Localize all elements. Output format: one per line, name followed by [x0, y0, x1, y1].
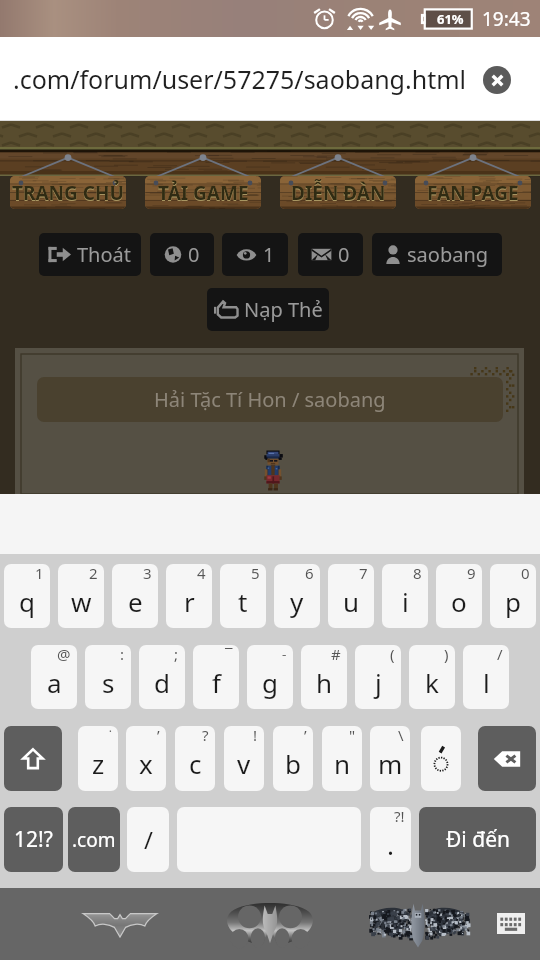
button[interactable]: TẢI GAME [145, 176, 261, 209]
staticText: .com/forum/user/57275/saobang.html [13, 62, 466, 96]
staticText: / [144, 823, 153, 856]
button[interactable]: : [85, 645, 131, 709]
staticText: ! [253, 726, 258, 745]
button[interactable]: ( [355, 645, 401, 709]
button[interactable]: 3 [112, 564, 158, 628]
staticText: FAN PAGE [427, 180, 519, 206]
staticText: 1 [263, 241, 275, 268]
button[interactable]: Thoát [39, 233, 141, 276]
button[interactable]: 1 [4, 564, 50, 628]
button[interactable]: 2 [58, 564, 104, 628]
staticText: Thoát [77, 241, 132, 268]
staticText: : [120, 645, 125, 664]
button[interactable]: Đi đến [419, 807, 536, 872]
staticText: " [349, 726, 356, 745]
staticText: j [375, 665, 382, 700]
button[interactable]: ) [409, 645, 455, 709]
button[interactable]: Home [210, 888, 330, 960]
button[interactable]: Back [60, 888, 180, 960]
button[interactable]: FAN PAGE [415, 176, 531, 209]
button[interactable]: .com [68, 807, 120, 872]
button[interactable]: 4 [166, 564, 212, 628]
button[interactable]: 6 [274, 564, 320, 628]
button[interactable]: 1 [222, 233, 288, 276]
button[interactable]: / [127, 807, 169, 872]
staticText: Hải Tặc Tí Hon / saobang [154, 386, 386, 413]
staticText: @ [57, 645, 71, 664]
staticText: ?! [394, 807, 405, 826]
button[interactable]: ˗ [247, 645, 293, 709]
button[interactable]: ! [224, 726, 264, 791]
button[interactable]: \ [370, 726, 410, 791]
button[interactable]: ?! [370, 807, 411, 872]
button[interactable]: 7 [328, 564, 374, 628]
button[interactable]: 12!? [4, 807, 63, 872]
staticText: 8 [413, 564, 422, 583]
button[interactable]: TRANG CHỦ [10, 176, 126, 209]
staticText: i [402, 584, 409, 619]
staticText: 9 [467, 564, 476, 583]
button[interactable]: 0 [490, 564, 536, 628]
staticText: x [139, 746, 153, 781]
staticText: m [378, 746, 403, 781]
staticText: 61% [437, 10, 464, 28]
button[interactable]: 0 [298, 233, 363, 276]
staticText: r [184, 584, 195, 619]
staticText: TẢI GAME [158, 181, 249, 207]
staticText: 2 [89, 564, 98, 583]
button[interactable]: Nạp Thẻ [207, 288, 329, 331]
button[interactable]: Backspace [478, 726, 536, 791]
button[interactable]: " [322, 726, 362, 791]
button[interactable]: Shift [4, 726, 62, 791]
button[interactable]: ; [139, 645, 185, 709]
button[interactable]: Clear text [483, 66, 511, 94]
staticText: b [285, 746, 301, 781]
staticText: u [343, 584, 360, 619]
button[interactable]: saobang [372, 233, 502, 276]
staticText: 0 [188, 241, 200, 268]
staticText: g [262, 665, 278, 700]
button[interactable]: Recent apps [358, 888, 478, 960]
staticText: s [102, 665, 115, 700]
button[interactable]: DIỄN ĐÀN [280, 176, 396, 209]
staticText: 1 [35, 564, 44, 583]
staticText: Đi đến [446, 825, 510, 854]
button[interactable]: @ [31, 645, 77, 709]
button[interactable]: ˙ [78, 726, 118, 791]
button[interactable]: / [463, 645, 509, 709]
staticText: 0 [338, 241, 350, 268]
staticText: e [128, 584, 143, 619]
staticText: TRANG CHỦ [12, 181, 124, 207]
staticText: ˗ [282, 645, 287, 664]
staticText: 3 [143, 564, 152, 583]
button[interactable]: ’ [126, 726, 166, 791]
button[interactable]: ‾ [193, 645, 239, 709]
staticText: ’ [157, 726, 160, 745]
staticText: l [483, 665, 490, 700]
staticText: f [212, 665, 221, 700]
button[interactable]: ’ [273, 726, 313, 791]
staticText: 0 [521, 564, 530, 583]
button[interactable]: 8 [382, 564, 428, 628]
staticText: DIỄN ĐÀN [291, 180, 386, 206]
button[interactable]: 9 [436, 564, 482, 628]
staticText: ) [444, 645, 449, 664]
staticText: FAN PAGE [427, 181, 519, 207]
staticText: ’ [304, 726, 307, 745]
staticText: 4 [197, 564, 206, 583]
staticText: 5 [251, 564, 260, 583]
staticText: a [47, 665, 62, 700]
button[interactable]: 5 [220, 564, 266, 628]
button[interactable]: Accent [421, 726, 461, 791]
staticText: . [387, 827, 394, 862]
staticText: o [451, 584, 467, 619]
staticText: 12!? [14, 825, 53, 854]
staticText: TẢI GAME [158, 180, 249, 206]
button[interactable]: Switch keyboard [496, 910, 526, 936]
button[interactable]: ? [175, 726, 215, 791]
button[interactable]: # [301, 645, 347, 709]
staticText: Nạp Thẻ [244, 296, 323, 323]
button[interactable]: 0 [150, 233, 214, 276]
staticText: h [316, 665, 333, 700]
